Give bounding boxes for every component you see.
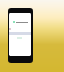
button[interactable]: App logo xyxy=(9,20,31,24)
